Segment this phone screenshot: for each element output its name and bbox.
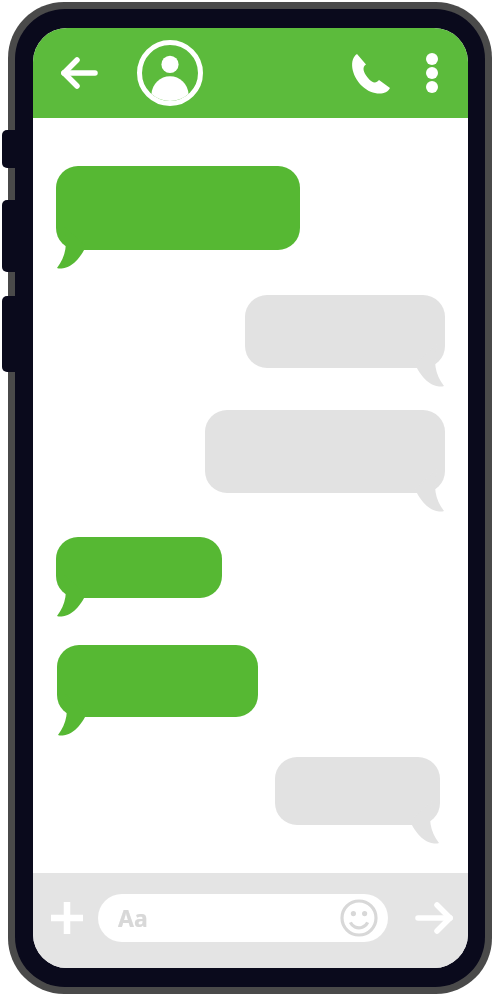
button[interactable]: Emoji <box>338 897 380 939</box>
button[interactable]: Call <box>346 48 396 98</box>
button[interactable]: Aa <box>98 894 388 942</box>
button[interactable] <box>56 537 236 620</box>
button[interactable]: Back <box>57 50 103 96</box>
button[interactable]: Send <box>408 892 460 944</box>
button[interactable]: More options <box>410 51 454 95</box>
button[interactable] <box>245 295 459 390</box>
button[interactable]: Add attachment <box>43 894 91 942</box>
button[interactable] <box>57 645 272 739</box>
button[interactable] <box>275 757 454 847</box>
button[interactable]: Contact profile <box>137 40 203 106</box>
button[interactable] <box>205 410 459 515</box>
button[interactable] <box>56 166 314 272</box>
staticText: Aa <box>118 902 148 933</box>
